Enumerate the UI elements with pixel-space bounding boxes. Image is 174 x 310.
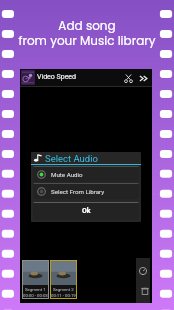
staticText: 00:00 - 00:03 [23,293,48,298]
button[interactable]: Speed [138,266,148,276]
staticText: Segment 2 [53,287,74,292]
button[interactable]: Trim [121,71,135,85]
staticText: from your Music library [18,32,156,49]
button[interactable]: Select From Library [33,183,139,199]
button[interactable]: Segment 2 [51,261,76,298]
button[interactable]: Mute Audio [33,166,139,182]
button[interactable]: Next [136,71,150,85]
staticText: Ok [82,207,91,215]
staticText: Add song [58,17,116,34]
button[interactable]: Delete [140,286,150,296]
staticText: Video Speed [37,73,77,81]
staticText: Segment 1 [25,287,46,292]
staticText: Select Audio [45,153,98,164]
staticText: Select From Library [51,188,105,195]
staticText: Mute Audio [51,171,83,178]
button[interactable]: Ok [33,202,139,220]
button[interactable]: Segment 1 [23,261,48,298]
staticText: 00:11 - 00:19 [51,293,76,298]
